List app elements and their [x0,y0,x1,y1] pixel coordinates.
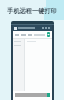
staticText: 手机远程一键打印 [7,7,57,15]
button[interactable]: 打印 [47,32,50,37]
